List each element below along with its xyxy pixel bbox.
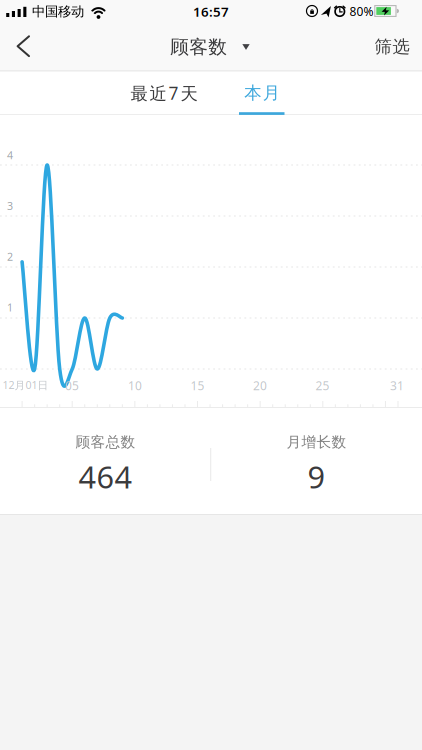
staticText: 31 (390, 377, 404, 393)
staticText: 25 (315, 377, 329, 393)
staticText: 4 (7, 148, 13, 162)
button[interactable]: 最近7天 (109, 71, 219, 114)
staticText: 15 (190, 377, 204, 393)
staticText: 9 (307, 456, 325, 497)
staticText: 3 (7, 199, 13, 213)
staticText: 12月01日 (2, 378, 48, 392)
staticText: 16:57 (193, 3, 229, 20)
staticText: 顾客数 (170, 35, 227, 58)
staticText: 顾客总数 (75, 433, 135, 451)
staticText: 最近7天 (130, 81, 197, 104)
staticText: 464 (78, 456, 132, 497)
staticText: 05 (65, 377, 79, 393)
staticText: 80% (349, 3, 373, 19)
staticText: 2 (7, 249, 13, 264)
staticText: 10 (128, 377, 142, 393)
staticText: 中国移动 (32, 3, 84, 20)
button[interactable]: 本月 (217, 71, 307, 114)
staticText: 20 (253, 377, 267, 393)
staticText: 本月 (244, 82, 280, 104)
staticText: 1 (7, 300, 13, 314)
button[interactable]: Back (0, 24, 44, 68)
button[interactable]: 筛选 (374, 36, 409, 57)
button[interactable]: 顾客数 (170, 35, 250, 58)
staticText: 筛选 (374, 36, 409, 57)
staticText: 月增长数 (286, 433, 346, 451)
